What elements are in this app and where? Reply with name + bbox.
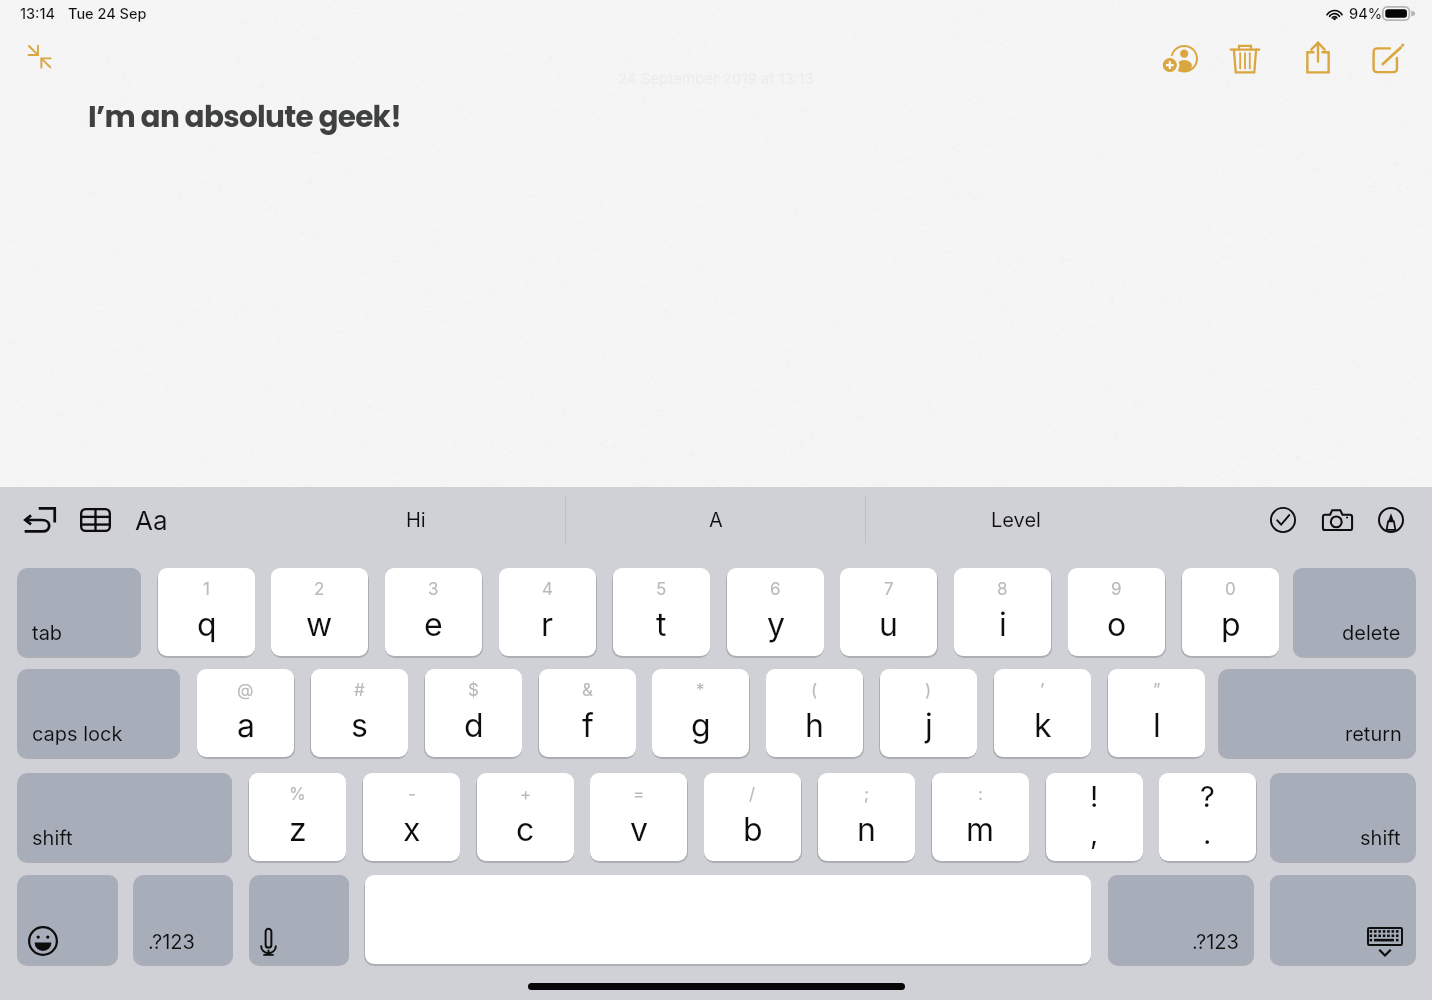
staticText: 5 <box>656 579 667 600</box>
button[interactable]: Camera <box>1312 495 1362 545</box>
button[interactable]: Hi <box>321 493 511 547</box>
button[interactable]: A <box>621 493 811 547</box>
staticText: 4 <box>542 579 553 600</box>
button[interactable]: Add people <box>1155 34 1203 82</box>
button[interactable]: caps lock <box>18 669 180 757</box>
staticText: Hi <box>406 508 426 532</box>
button[interactable]: 1 <box>158 568 255 656</box>
button[interactable]: Aa <box>126 495 176 545</box>
button[interactable]: ( <box>766 669 863 757</box>
button[interactable]: ’ <box>994 669 1091 757</box>
staticText: d <box>464 706 484 745</box>
button[interactable]: delete <box>1293 568 1415 656</box>
staticText: .?123 <box>1192 930 1239 954</box>
staticText: f <box>582 706 594 745</box>
staticText: x <box>403 810 421 849</box>
button[interactable]: Checklist <box>1258 495 1308 545</box>
staticText: caps lock <box>32 722 123 746</box>
staticText: Aa <box>135 505 168 536</box>
staticText: ’ <box>1040 680 1045 701</box>
staticText: r <box>541 605 554 644</box>
staticText: % <box>289 784 306 805</box>
staticText: 0 <box>1225 579 1236 600</box>
button[interactable]: Markup <box>1366 495 1416 545</box>
button[interactable]: ) <box>880 669 977 757</box>
staticText: $ <box>468 680 479 701</box>
staticText: ( <box>811 680 818 701</box>
button[interactable]: - <box>363 773 460 861</box>
button[interactable]: ; <box>818 773 915 861</box>
staticText: delete <box>1342 621 1401 645</box>
staticText: o <box>1107 605 1127 644</box>
staticText: 2 <box>314 579 325 600</box>
button[interactable]: / <box>704 773 801 861</box>
button[interactable]: : <box>932 773 1029 861</box>
staticText: & <box>582 680 593 701</box>
button[interactable]: ? <box>1159 773 1256 861</box>
button[interactable]: tab <box>18 568 141 656</box>
staticText: 1 <box>203 579 210 600</box>
staticText: A <box>709 508 723 532</box>
staticText: 3 <box>428 579 439 600</box>
staticText: ” <box>1153 680 1161 701</box>
staticText: l <box>1153 706 1161 745</box>
button[interactable]: 0 <box>1182 568 1279 656</box>
button[interactable]: 8 <box>954 568 1051 656</box>
button[interactable]: 2 <box>271 568 368 656</box>
button[interactable]: & <box>539 669 636 757</box>
button[interactable]: Hide keyboard <box>1270 875 1415 964</box>
button[interactable]: = <box>590 773 687 861</box>
staticText: + <box>520 784 532 805</box>
button[interactable]: 7 <box>840 568 937 656</box>
button[interactable]: Undo <box>15 495 65 545</box>
staticText: = <box>633 784 645 805</box>
staticText: a <box>237 706 255 745</box>
button[interactable]: Dictate <box>250 875 349 964</box>
button[interactable]: .?123 <box>134 875 233 964</box>
button[interactable]: 4 <box>499 568 596 656</box>
button[interactable]: New note <box>1364 34 1412 82</box>
button[interactable]: $ <box>425 669 522 757</box>
staticText: : <box>978 784 983 805</box>
staticText: tab <box>32 621 63 645</box>
button[interactable]: Collapse <box>14 31 64 81</box>
staticText: Tue 24 Sep <box>68 5 147 23</box>
button[interactable]: 9 <box>1068 568 1165 656</box>
staticText: c <box>516 810 535 849</box>
staticText: @ <box>237 680 254 701</box>
button[interactable]: Delete <box>1221 34 1269 82</box>
button[interactable]: Emoji <box>18 875 118 964</box>
button[interactable]: ! <box>1046 773 1143 861</box>
staticText: 6 <box>770 579 781 600</box>
button[interactable]: Level <box>921 493 1111 547</box>
staticText: w <box>306 605 333 644</box>
button[interactable]: % <box>249 773 346 861</box>
staticText: s <box>351 706 368 745</box>
button[interactable]: # <box>311 669 408 757</box>
button[interactable]: shift <box>18 773 232 861</box>
staticText: j <box>925 706 933 745</box>
staticText: g <box>691 706 711 745</box>
button[interactable]: Insert table <box>70 495 120 545</box>
button[interactable]: * <box>652 669 749 757</box>
staticText: ? <box>1200 779 1215 814</box>
button[interactable]: @ <box>197 669 294 757</box>
staticText: ) <box>925 680 932 701</box>
button[interactable]: ” <box>1108 669 1205 757</box>
button[interactable]: .?123 <box>1108 875 1253 964</box>
button[interactable]: + <box>477 773 574 861</box>
staticText: b <box>743 810 763 849</box>
staticText: . <box>1203 816 1212 851</box>
button[interactable]: return <box>1219 669 1416 757</box>
staticText: 7 <box>884 579 894 600</box>
button[interactable]: 3 <box>385 568 482 656</box>
button[interactable]: shift <box>1270 773 1415 861</box>
staticText: 13:14 <box>20 5 56 23</box>
staticText: n <box>857 810 876 849</box>
staticText: m <box>966 810 995 849</box>
button[interactable]: Share <box>1294 33 1342 81</box>
button[interactable]: 6 <box>727 568 824 656</box>
button[interactable]: 5 <box>613 568 710 656</box>
